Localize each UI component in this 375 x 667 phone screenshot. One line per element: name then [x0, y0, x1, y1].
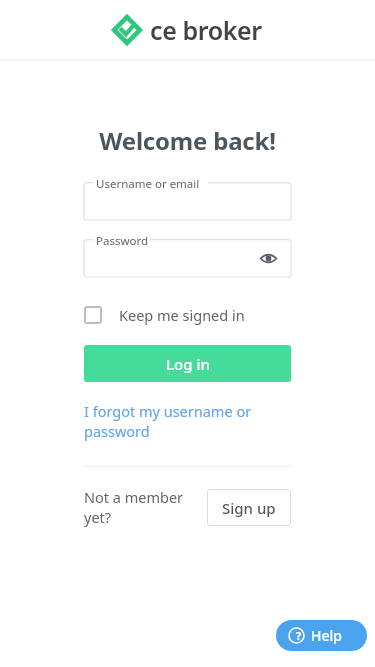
staticText: Password	[96, 233, 149, 249]
staticText: Sign up	[222, 498, 276, 518]
staticText: I forgot my username or password	[84, 401, 291, 442]
staticText: ?	[296, 628, 302, 643]
staticText: Not a member yet?	[84, 487, 189, 527]
staticText: ce broker	[150, 13, 262, 47]
button[interactable]: Show password	[257, 247, 279, 269]
button[interactable]: Keep me signed in	[84, 303, 245, 327]
button[interactable]: CE Broker home	[109, 9, 266, 51]
staticText: Welcome back!	[84, 124, 291, 157]
button[interactable]: ?	[276, 620, 367, 651]
button[interactable]: Sign up	[207, 489, 291, 526]
staticText: Log in	[166, 354, 210, 374]
staticText: Keep me signed in	[119, 305, 245, 325]
staticText: Help	[311, 626, 342, 645]
button[interactable]: I forgot my username or password	[84, 401, 291, 442]
staticText: Username or email	[96, 176, 200, 192]
button[interactable]: Log in	[84, 345, 291, 382]
